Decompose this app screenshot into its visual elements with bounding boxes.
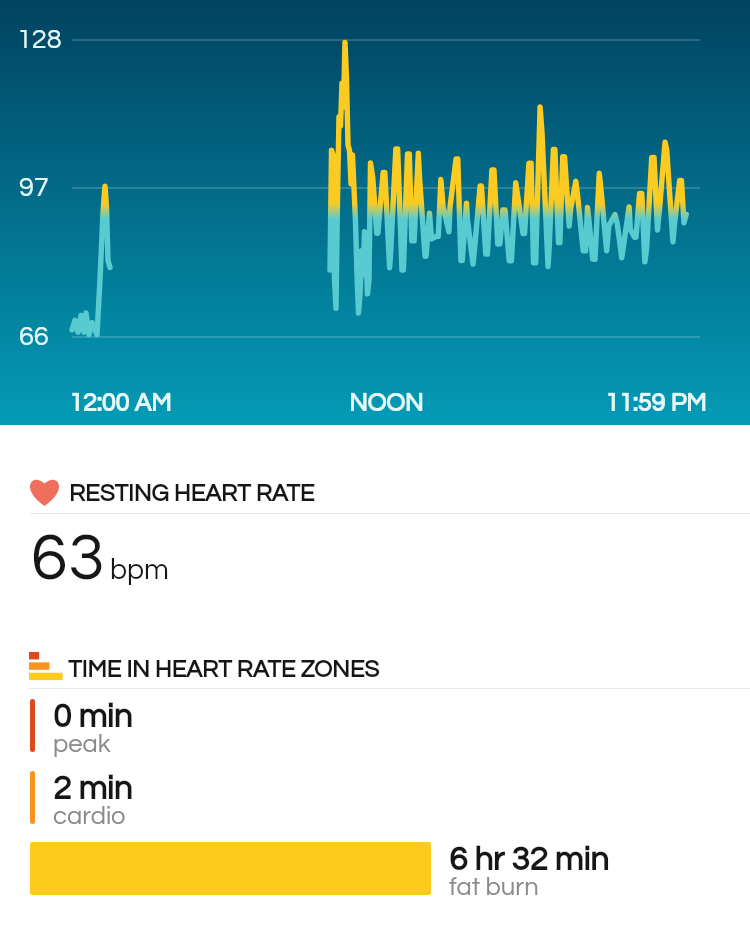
other: Heart rate zones <box>29 652 64 680</box>
staticText: 0 min <box>53 700 133 734</box>
staticText: fat burn <box>449 874 539 900</box>
staticText: TIME IN HEART RATE ZONES <box>68 657 380 682</box>
staticText: 6 hr 32 min <box>449 843 609 877</box>
staticText: 12:00 AM <box>69 390 172 416</box>
staticText: 97 <box>19 174 49 202</box>
staticText: NOON <box>349 390 424 416</box>
staticText: cardio <box>53 803 126 829</box>
staticText: 2 min <box>53 772 133 806</box>
button[interactable]: 0 min <box>0 699 750 753</box>
button[interactable]: 6 hr 32 min <box>0 842 750 896</box>
staticText: 11:59 PM <box>605 390 707 416</box>
staticText: 63 <box>31 525 106 593</box>
staticText: RESTING HEART RATE <box>69 481 315 506</box>
staticText: bpm <box>110 556 169 585</box>
button[interactable]: 2 min <box>0 771 750 825</box>
staticText: 66 <box>19 323 49 351</box>
staticText: 128 <box>17 26 62 54</box>
staticText: peak <box>53 731 111 757</box>
other: Heart <box>30 478 59 506</box>
